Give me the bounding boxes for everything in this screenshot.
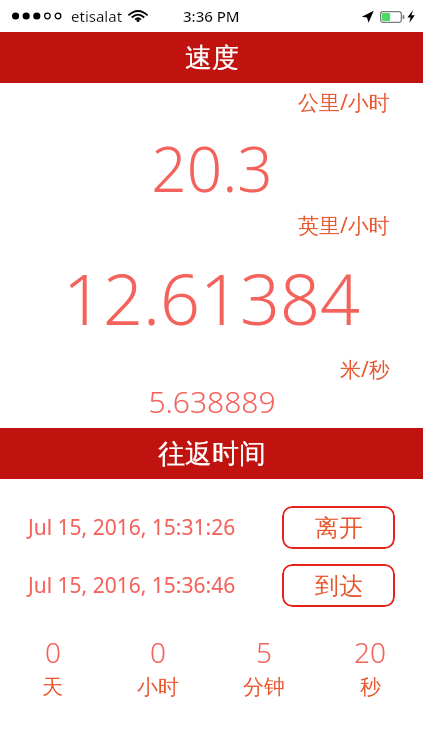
staticText: 20.3 <box>151 126 273 210</box>
staticText: Jul 15, 2016, 15:36:46 <box>28 571 236 600</box>
staticText: 往返时间 <box>158 437 266 471</box>
button[interactable]: 离开 <box>282 506 395 549</box>
button[interactable]: 0 <box>0 633 105 700</box>
button[interactable]: 0 <box>105 633 211 700</box>
staticText: 0 <box>45 633 61 671</box>
staticText: 公里/小时 <box>298 88 390 117</box>
staticText: 分钟 <box>243 674 285 700</box>
button[interactable]: 5 <box>211 633 317 700</box>
staticText: 3:36 PM <box>183 6 240 26</box>
staticText: 20 <box>354 633 386 671</box>
staticText: etisalat <box>71 6 123 26</box>
staticText: 5.638889 <box>148 381 276 422</box>
staticText: 秒 <box>360 674 381 700</box>
staticText: Jul 15, 2016, 15:31:26 <box>28 513 236 542</box>
staticText: 英里/小时 <box>298 211 390 240</box>
staticText: 速度 <box>185 41 239 75</box>
staticText: 离开 <box>315 513 363 543</box>
staticText: 米/秒 <box>340 355 390 384</box>
staticText: 0 <box>150 633 166 671</box>
staticText: 小时 <box>137 674 179 700</box>
staticText: 天 <box>42 674 63 700</box>
button[interactable]: 20 <box>317 633 423 700</box>
staticText: 到达 <box>315 571 363 601</box>
button[interactable]: 到达 <box>282 564 395 607</box>
staticText: 12.61384 <box>63 250 360 345</box>
staticText: 5 <box>256 633 272 671</box>
